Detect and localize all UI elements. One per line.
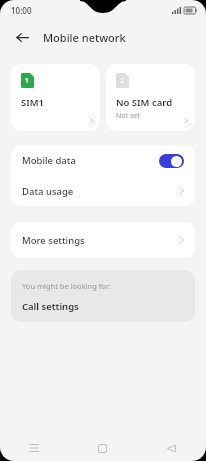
button[interactable]: Home [68, 435, 137, 461]
staticText: SIM1 [21, 96, 44, 109]
staticText: More settings [22, 234, 179, 247]
button[interactable]: Back [137, 435, 206, 461]
button[interactable]: 2 [106, 64, 195, 131]
staticText: Mobile data [22, 154, 159, 167]
staticText: Not set [116, 111, 140, 121]
button[interactable]: Call settings [22, 300, 79, 313]
staticText: 10:00 [11, 5, 32, 16]
staticText: No SIM card [116, 96, 173, 109]
button[interactable]: More settings [11, 222, 195, 258]
button[interactable]: Recents [0, 435, 68, 461]
button[interactable]: Back [11, 26, 33, 48]
staticText: Data usage [22, 185, 179, 198]
button[interactable]: Data usage [11, 176, 195, 206]
button[interactable]: Mobile data [11, 145, 195, 176]
other: Mobile data toggle [159, 154, 184, 168]
staticText: 1 [25, 76, 30, 86]
staticText: Call settings [22, 300, 79, 313]
staticText: You might be looking for: [22, 281, 112, 291]
staticText: 2 [120, 76, 125, 86]
button[interactable]: 1 [11, 64, 100, 131]
staticText: Mobile network [43, 30, 126, 45]
